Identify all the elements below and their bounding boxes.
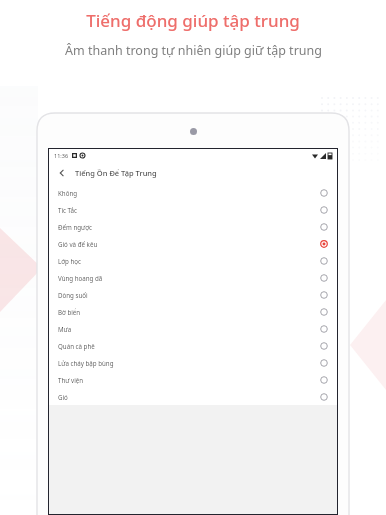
staticText: Âm thanh trong tự nhiên giúp giữ tập tru…	[65, 42, 322, 59]
staticText: Dòng suối	[58, 291, 88, 299]
button[interactable]: Đếm ngược	[49, 218, 337, 235]
staticText: Đếm ngược	[58, 223, 92, 231]
staticText: Bờ biển	[58, 308, 81, 316]
staticText: Thư viện	[58, 376, 84, 384]
staticText: Vùng hoang dã	[58, 274, 103, 282]
button[interactable]: Back	[49, 162, 75, 184]
staticText: Gió và đế kêu	[58, 240, 98, 248]
button[interactable]: Gió và đế kêu	[49, 235, 337, 252]
button[interactable]: Bờ biển	[49, 303, 337, 320]
staticText: Lớp học	[58, 257, 82, 265]
button[interactable]: Lớp học	[49, 252, 337, 269]
button[interactable]: Mưa	[49, 320, 337, 337]
staticText: Gió	[58, 393, 68, 401]
button[interactable]: Vùng hoang dã	[49, 269, 337, 286]
staticText: Quán cà phê	[58, 342, 95, 350]
staticText: Tíc Tắc	[58, 206, 78, 214]
button[interactable]: Gió	[49, 388, 337, 405]
button[interactable]: Lửa cháy bập bùng	[49, 354, 337, 371]
staticText: Không	[58, 189, 78, 197]
button[interactable]: Tíc Tắc	[49, 201, 337, 218]
button[interactable]: Không	[49, 184, 337, 201]
staticText: Tiếng Ồn Để Tập Trung	[75, 168, 157, 178]
button[interactable]: Thư viện	[49, 371, 337, 388]
staticText: 11:36	[54, 152, 69, 159]
button[interactable]: Dòng suối	[49, 286, 337, 303]
staticText: Mưa	[58, 325, 72, 333]
button[interactable]: Quán cà phê	[49, 337, 337, 354]
staticText: Lửa cháy bập bùng	[58, 359, 114, 367]
staticText: Tiếng động giúp tập trung	[86, 9, 300, 32]
